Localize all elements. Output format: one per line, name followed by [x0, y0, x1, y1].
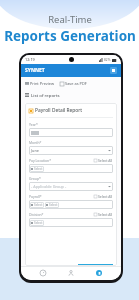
staticText: Select	[34, 221, 43, 225]
button[interactable]: Select	[30, 166, 44, 172]
button[interactable]	[29, 128, 113, 137]
staticText: Month*	[29, 140, 42, 145]
button[interactable]: Select	[45, 202, 59, 208]
button[interactable]: Select All	[94, 158, 113, 163]
staticText: Select	[34, 167, 43, 171]
staticText: Print Preview	[30, 81, 54, 86]
staticText: Year*	[29, 122, 38, 127]
staticText: 82%	[104, 58, 111, 62]
button[interactable]: History	[37, 267, 49, 279]
staticText: SYNNET	[25, 67, 45, 74]
button[interactable]: Select	[30, 202, 44, 208]
button[interactable]: Print Preview	[25, 81, 54, 86]
button[interactable]: List of reports	[25, 92, 60, 98]
button[interactable]: Select	[30, 220, 44, 226]
button[interactable]: Menu	[110, 67, 117, 74]
staticText: Pay Location*	[29, 158, 52, 163]
staticText: Select All	[98, 194, 113, 199]
staticText: Select All	[98, 212, 113, 217]
staticText: Payroll Detail Report	[35, 107, 83, 114]
staticText: Save as PDF	[65, 81, 87, 86]
staticText: June	[31, 148, 39, 153]
button[interactable]: Select	[29, 218, 113, 227]
staticText: Select	[34, 203, 43, 207]
staticText: Reports Generation	[4, 27, 136, 45]
button[interactable]: Payroll Detail Report	[29, 107, 113, 114]
button[interactable]: Save as PDF	[60, 81, 87, 86]
staticText: Real-Time	[48, 13, 92, 26]
button[interactable]: June	[29, 146, 113, 155]
staticText: List of reports	[31, 92, 60, 98]
staticText: 12:19	[25, 57, 35, 62]
staticText: Group*	[29, 176, 41, 181]
button[interactable]: Reports	[93, 267, 105, 279]
staticText: Select	[49, 203, 58, 207]
button[interactable]: Select All	[94, 212, 113, 217]
staticText: Division*	[29, 212, 44, 217]
button[interactable]: Select All	[94, 194, 113, 199]
staticText: Payroll*	[29, 194, 42, 199]
staticText: Select All	[98, 158, 113, 163]
button[interactable]: Select	[29, 164, 113, 173]
button[interactable]: Profile	[65, 267, 77, 279]
button[interactable]: - Applicable Group -	[29, 182, 113, 191]
staticText: - Applicable Group -	[31, 184, 67, 189]
button[interactable]: Select	[29, 200, 113, 209]
